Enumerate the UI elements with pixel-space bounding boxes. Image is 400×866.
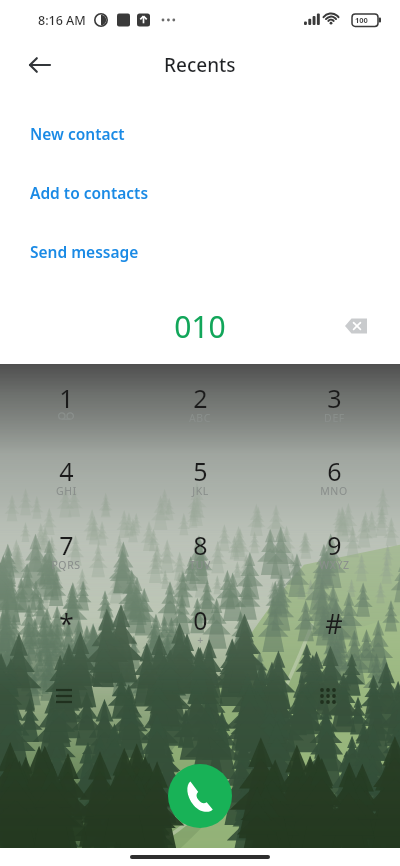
staticText: 100 <box>355 15 368 25</box>
staticText: JKL <box>192 484 209 498</box>
button[interactable]: Send message <box>0 222 400 281</box>
button[interactable]: 7 <box>18 528 114 590</box>
button[interactable]: 3 <box>286 381 382 443</box>
staticText: 3 <box>327 381 342 415</box>
staticText: Send message <box>30 241 139 262</box>
button[interactable]: 0 <box>152 603 248 665</box>
button[interactable]: Add to contacts <box>0 163 400 222</box>
staticText: 6 <box>327 454 342 488</box>
button[interactable]: 6 <box>286 454 382 516</box>
button[interactable]: Call <box>168 764 232 828</box>
button[interactable]: 4 <box>18 454 114 516</box>
staticText: 010 <box>174 306 226 347</box>
staticText: WXYZ <box>319 558 350 572</box>
staticText: GHI <box>56 484 77 498</box>
staticText: 4 <box>59 454 74 488</box>
staticText: Add to contacts <box>30 182 149 203</box>
button[interactable]: 1 <box>18 381 114 443</box>
staticText: 8:16 AM <box>38 12 86 29</box>
button[interactable]: 8 <box>152 528 248 590</box>
button[interactable]: New contact <box>0 104 400 163</box>
staticText: ABC <box>189 411 211 425</box>
staticText: New contact <box>30 123 125 144</box>
button[interactable]: Backspace <box>334 306 378 350</box>
staticText: PQRS <box>51 558 81 572</box>
button[interactable]: Back <box>18 43 62 87</box>
staticText: 2 <box>193 381 208 415</box>
staticText: 7 <box>59 528 74 562</box>
staticText: DEF <box>324 411 345 425</box>
button[interactable]: 2 <box>152 381 248 443</box>
staticText: 8 <box>193 528 208 562</box>
staticText: 1 <box>59 381 74 415</box>
staticText: * <box>59 605 74 642</box>
button[interactable]: 5 <box>152 454 248 516</box>
button[interactable]: # <box>286 603 382 665</box>
staticText: + <box>197 633 204 647</box>
staticText: 9 <box>327 528 342 562</box>
button[interactable]: 9 <box>286 528 382 590</box>
staticText: TUV <box>189 558 211 572</box>
staticText: 5 <box>193 454 208 488</box>
button[interactable]: Call log <box>42 674 86 718</box>
button[interactable]: * <box>18 603 114 665</box>
staticText: MNO <box>320 484 348 498</box>
staticText: 0 <box>193 603 208 637</box>
staticText: # <box>325 605 343 642</box>
button[interactable]: Keypad <box>306 674 350 718</box>
staticText: Recents <box>164 52 236 78</box>
